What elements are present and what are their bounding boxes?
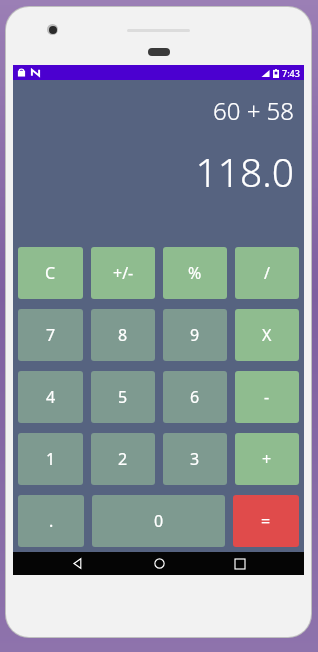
button[interactable]: 3 [163,433,227,485]
staticText: +/- [113,262,134,284]
staticText: 0 [154,510,164,532]
staticText: / [264,262,270,284]
staticText: 7:43 [282,67,300,79]
staticText: 118.0 [195,145,294,198]
staticText: 60 + 58 [213,94,294,127]
staticText: C [45,262,56,284]
button[interactable]: Recent apps [223,552,257,575]
staticText: 1 [46,448,56,470]
staticText: - [264,386,270,408]
button[interactable]: 1 [18,433,83,485]
staticText: . [49,510,54,532]
staticText: 3 [190,448,200,470]
button[interactable]: +/- [91,247,155,299]
staticText: + [262,448,272,470]
button[interactable]: - [235,371,299,423]
button[interactable]: % [163,247,227,299]
button[interactable]: / [235,247,299,299]
button[interactable]: 2 [91,433,155,485]
staticText: 6 [190,386,200,408]
button[interactable]: 5 [91,371,155,423]
button[interactable]: Home [142,552,176,575]
staticText: X [262,324,272,346]
button[interactable]: 8 [91,309,155,361]
staticText: 4 [46,386,56,408]
button[interactable]: 9 [163,309,227,361]
staticText: 8 [118,324,128,346]
button[interactable]: 7 [18,309,83,361]
staticText: % [188,262,202,284]
staticText: 7 [46,324,56,346]
button[interactable]: 4 [18,371,83,423]
staticText: 9 [190,324,200,346]
staticText: = [261,510,271,532]
button[interactable]: X [235,309,299,361]
button[interactable]: C [18,247,83,299]
button[interactable]: . [18,495,84,547]
button[interactable]: 6 [163,371,227,423]
button[interactable]: + [235,433,299,485]
staticText: 5 [118,386,128,408]
button[interactable]: Back [60,552,94,575]
button[interactable]: 0 [92,495,225,547]
button[interactable]: = [233,495,299,547]
staticText: 2 [118,448,128,470]
